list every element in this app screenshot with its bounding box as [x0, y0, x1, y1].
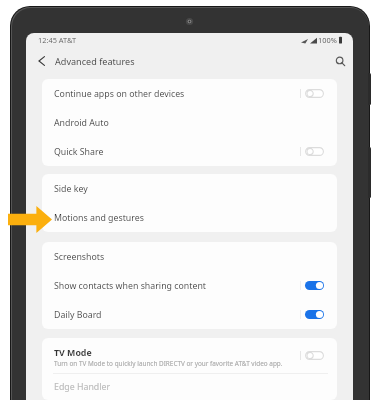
button[interactable]: Side key — [42, 174, 337, 203]
button[interactable]: Show contacts when sharing content — [42, 271, 337, 300]
staticText: Android Auto — [54, 117, 109, 129]
button[interactable]: Screenshots — [42, 242, 337, 271]
staticText: 100% — [318, 35, 337, 45]
button[interactable]: Daily Board — [42, 300, 337, 329]
staticText: Edge Handler — [54, 381, 111, 393]
staticText: Screenshots — [54, 251, 105, 263]
button[interactable]: TV Mode — [42, 338, 337, 373]
button[interactable]: Switch off — [305, 147, 324, 156]
staticText: Quick Share — [54, 146, 104, 158]
staticText: Continue apps on other devices — [54, 88, 185, 100]
staticText: Turn on TV Mode to quickly launch DIRECT… — [54, 359, 283, 368]
staticText: Advanced features — [55, 55, 135, 67]
button[interactable]: Motions and gestures — [42, 203, 337, 232]
button[interactable]: Continue apps on other devices — [42, 79, 337, 108]
staticText: Show contacts when sharing content — [54, 280, 206, 292]
button[interactable]: Quick Share — [42, 137, 337, 166]
button[interactable]: Back — [28, 48, 55, 74]
button[interactable]: Edge Handler — [42, 374, 337, 400]
button[interactable]: Power — [368, 147, 371, 198]
button[interactable]: Switch off — [305, 89, 324, 98]
staticText: Daily Board — [54, 309, 102, 321]
staticText: TV Mode — [54, 347, 92, 359]
staticText: 12:45 AT&T — [38, 35, 77, 45]
button[interactable]: Android Auto — [42, 108, 337, 137]
button[interactable]: Switch on — [305, 310, 324, 319]
button[interactable]: Switch off — [305, 351, 324, 360]
staticText: Motions and gestures — [54, 212, 144, 224]
button[interactable]: Search — [327, 48, 353, 74]
button[interactable]: Switch on — [305, 281, 324, 290]
staticText: Side key — [54, 183, 88, 195]
button[interactable]: Volume — [368, 73, 371, 105]
